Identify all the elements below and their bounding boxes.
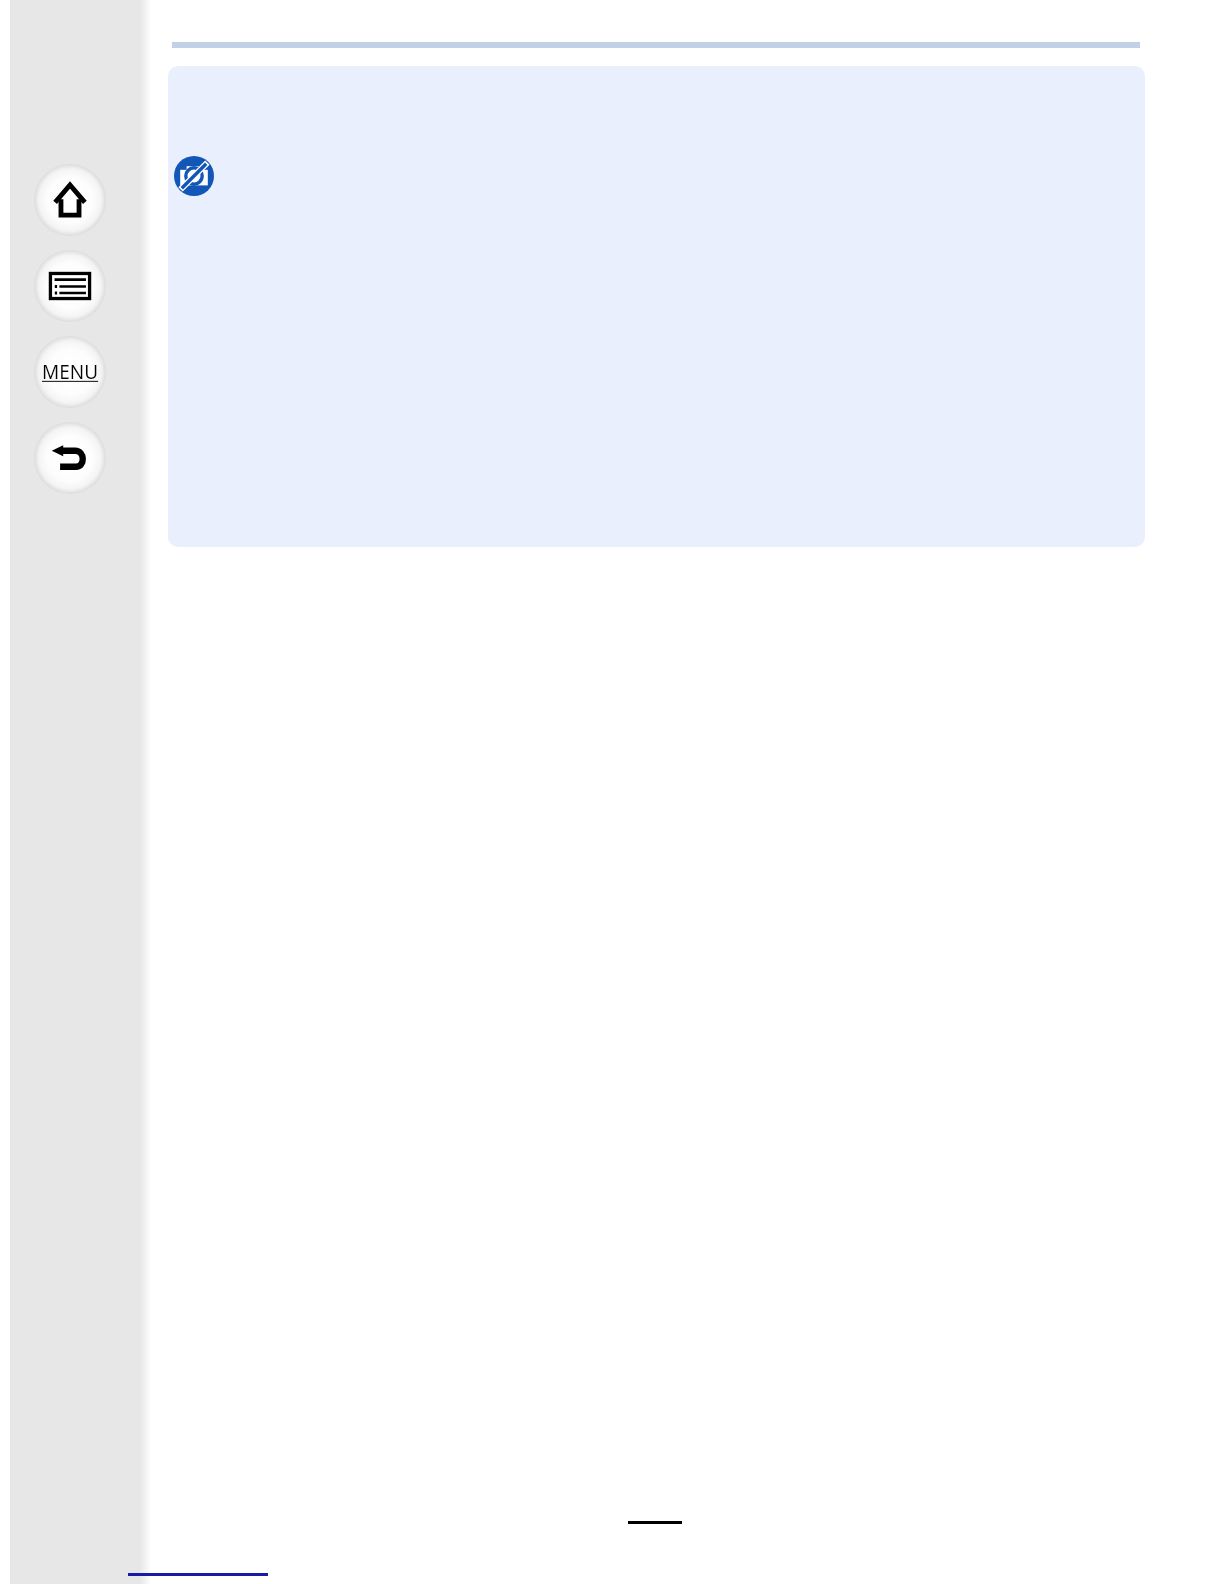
button[interactable] <box>168 66 1145 547</box>
button[interactable]: Menu <box>34 336 106 408</box>
button[interactable]: Home <box>34 164 106 236</box>
staticText: MENU <box>42 359 99 385</box>
button[interactable]: Contents <box>34 250 106 322</box>
button[interactable]: Back <box>34 422 106 494</box>
